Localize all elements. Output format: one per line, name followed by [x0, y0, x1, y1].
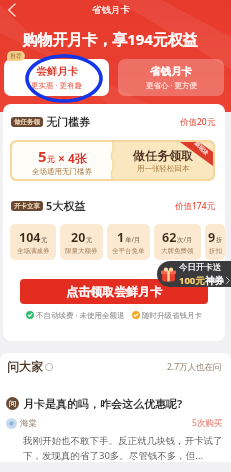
- staticText: 次/月: [177, 235, 193, 244]
- staticText: 做任务领取: [133, 148, 193, 163]
- staticText: 用一张轻松回本: [137, 164, 190, 173]
- button[interactable]: 尝鲜月卡: [4, 59, 109, 96]
- staticText: 无门槛券: [46, 115, 90, 129]
- staticText: 月卡是真的吗，咋会这么优惠呢?: [23, 396, 183, 411]
- staticText: 100元: [179, 274, 205, 287]
- staticText: 元: [41, 236, 48, 244]
- staticText: 购物开月卡，享194元权益: [0, 29, 220, 49]
- staticText: 新玩法: [193, 142, 210, 157]
- staticText: 更省心 · 更方便: [146, 80, 197, 90]
- staticText: 做任务领: [14, 118, 40, 126]
- staticText: 不自动续费 · 未使用全额退: [36, 310, 125, 320]
- staticText: 5大权益: [46, 198, 86, 213]
- staticText: 104: [19, 229, 41, 246]
- staticText: 价值174元: [175, 200, 216, 212]
- staticText: 开卡立享: [14, 202, 40, 210]
- button[interactable]: 省钱月卡: [118, 59, 224, 96]
- staticText: 海棠: [20, 418, 37, 429]
- staticText: 问: [9, 399, 16, 408]
- staticText: 省钱月卡: [150, 65, 192, 78]
- staticText: 今日开卡送: [179, 262, 222, 273]
- staticText: 2.7万人也在问: [167, 361, 222, 373]
- staticText: 尝鲜月卡: [36, 65, 78, 78]
- staticText: 62: [162, 229, 177, 246]
- staticText: 全场满减券: [17, 247, 50, 255]
- staticText: 省钱月卡: [92, 4, 130, 16]
- button[interactable]: Back: [2, 1, 20, 19]
- staticText: 我刚开始也不敢下手。反正就几块钱，开卡试了下，发现真的省了30多。尽管钱不多，但…: [23, 435, 223, 462]
- staticText: 5: [38, 146, 47, 166]
- staticText: 问大家: [7, 359, 43, 374]
- button[interactable]: 今日开卡送: [161, 261, 230, 287]
- staticText: 随时升级省钱月卡: [142, 311, 202, 320]
- staticText: 神券: [205, 275, 224, 287]
- staticText: 点击领取尝鲜月卡: [66, 284, 162, 299]
- staticText: 元: [47, 154, 55, 164]
- staticText: 折: [216, 236, 223, 244]
- staticText: × 4张: [58, 150, 87, 166]
- staticText: 全场通用无门槛券: [32, 167, 92, 176]
- staticText: 更实惠 · 更有趣: [31, 80, 82, 90]
- staticText: 单/月: [125, 235, 141, 244]
- staticText: 20: [71, 229, 86, 246]
- staticText: 5次购买: [192, 417, 223, 429]
- staticText: 限量大额券: [65, 247, 98, 255]
- staticText: 推荐: [10, 52, 22, 60]
- staticText: 9: [208, 229, 216, 246]
- button[interactable]: 点击领取尝鲜月卡: [20, 279, 208, 304]
- staticText: 折扣: [209, 247, 222, 255]
- staticText: 元: [86, 236, 93, 244]
- staticText: 价值20元: [180, 116, 216, 128]
- staticText: 全平台免单: [112, 247, 145, 255]
- staticText: 1: [117, 229, 125, 246]
- staticText: 大牌免费领: [161, 247, 194, 255]
